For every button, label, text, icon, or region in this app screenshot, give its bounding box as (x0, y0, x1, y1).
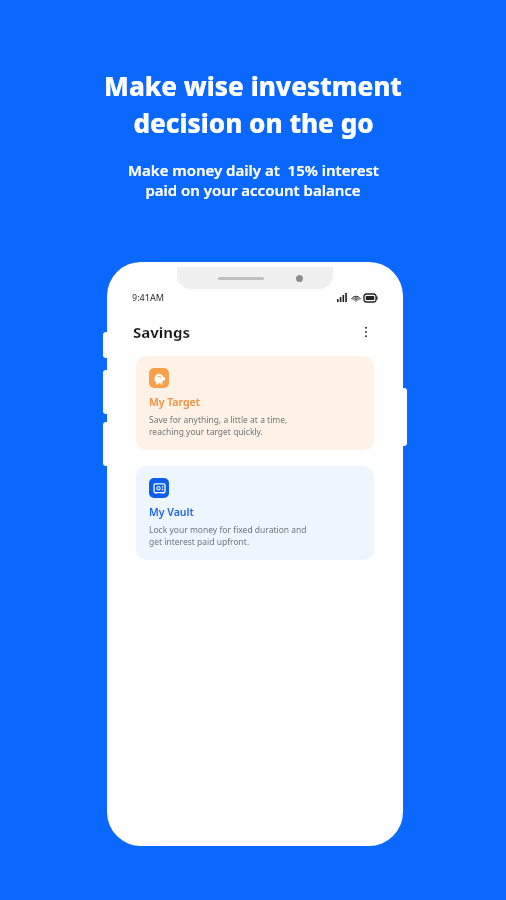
staticText: paid on your account balance (145, 180, 361, 200)
staticText: Lock your money for fixed duration and (149, 524, 307, 536)
staticText: My Vault (149, 505, 194, 519)
staticText: reaching your target quickly. (149, 426, 263, 438)
staticText: decision on the go (133, 105, 374, 140)
button[interactable]: My Target (136, 356, 374, 450)
staticText: Save for anything, a little at a time, (149, 414, 288, 426)
button[interactable]: More options (355, 321, 377, 343)
staticText: My Target (149, 395, 200, 409)
staticText: Make money daily at 15% interest (128, 160, 379, 180)
staticText: Make wise investment (104, 68, 402, 103)
button[interactable]: My Vault (136, 466, 374, 560)
staticText: Savings (133, 322, 191, 342)
staticText: get interest paid upfront. (149, 536, 250, 548)
staticText: 9:41AM (132, 291, 165, 303)
